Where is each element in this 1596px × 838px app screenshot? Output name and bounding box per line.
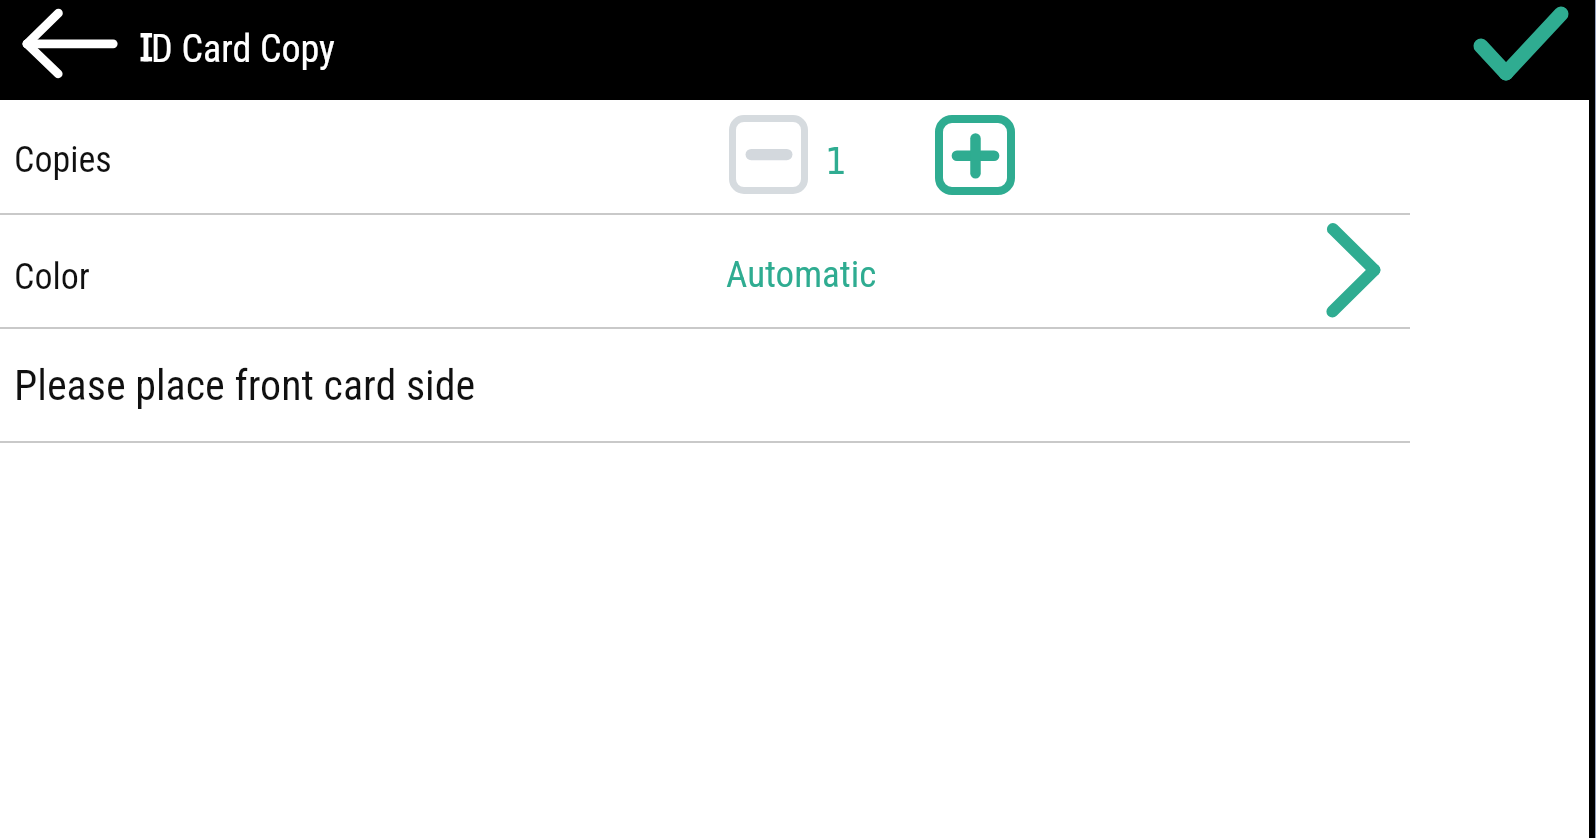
staticText: Copies xyxy=(14,139,112,181)
other: ID Card Copy xyxy=(139,0,349,100)
staticText: Color xyxy=(14,256,90,298)
button[interactable]: Navigate up xyxy=(0,0,137,100)
button[interactable]: Confirm xyxy=(1460,0,1586,100)
button[interactable]: Open colour options xyxy=(1315,215,1395,327)
staticText: Automatic xyxy=(726,253,877,296)
button[interactable]: Decrease number of copies xyxy=(729,115,808,194)
staticText: 1 xyxy=(825,139,847,183)
button[interactable] xyxy=(0,215,1596,327)
staticText: Please place front card side xyxy=(14,361,476,410)
staticText: D Card Copy xyxy=(151,27,335,72)
button[interactable]: Increase number of copies xyxy=(935,115,1015,195)
